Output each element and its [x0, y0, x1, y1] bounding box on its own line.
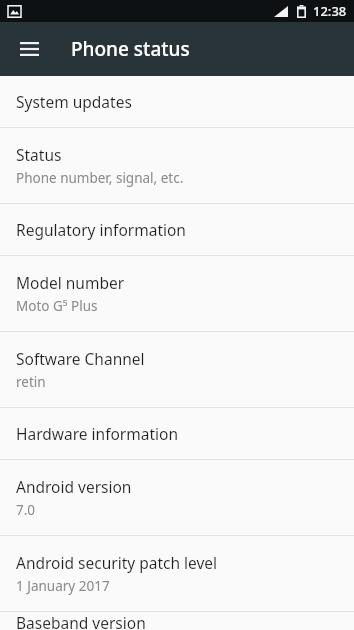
staticText: Android version — [16, 476, 132, 497]
staticText: Moto G⁵ Plus — [16, 297, 98, 315]
staticText: Phone status — [71, 36, 190, 62]
button[interactable]: Software Channel — [0, 332, 354, 407]
button[interactable]: Regulatory information — [0, 204, 354, 255]
staticText: 7.0 — [16, 501, 36, 519]
staticText: Regulatory information — [16, 219, 186, 240]
staticText: Software Channel — [16, 348, 145, 369]
staticText: Phone number, signal, etc. — [16, 169, 184, 187]
staticText: System updates — [16, 91, 132, 112]
staticText: Model number — [16, 272, 125, 293]
staticText: Android security patch level — [16, 552, 218, 573]
button[interactable]: Status — [0, 128, 354, 203]
button[interactable]: Android version — [0, 460, 354, 535]
staticText: Status — [16, 144, 62, 165]
staticText: retin — [16, 373, 46, 391]
button[interactable]: Model number — [0, 256, 354, 331]
staticText: Hardware information — [16, 423, 178, 444]
button[interactable]: Open navigation menu — [8, 28, 50, 70]
staticText: 12:38 — [313, 2, 347, 20]
button[interactable]: System updates — [0, 76, 354, 127]
staticText: Baseband version — [16, 612, 146, 630]
button[interactable]: Android security patch level — [0, 536, 354, 611]
button[interactable]: Hardware information — [0, 408, 354, 459]
staticText: 1 January 2017 — [16, 577, 110, 595]
button[interactable]: Baseband version — [0, 612, 354, 630]
